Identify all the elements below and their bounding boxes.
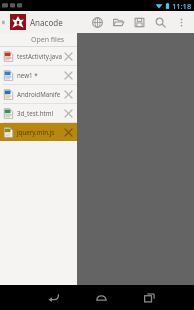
button[interactable]: new1 * <box>0 66 77 84</box>
button[interactable]: Navigate up <box>0 11 9 33</box>
staticText: jquery.min.js <box>17 128 63 136</box>
button[interactable]: Close 3d_test.html <box>63 108 74 119</box>
button[interactable]: Search <box>150 11 171 33</box>
staticText: (1)[f"").toLowerCase(),b[X]=b[X]&&new Re… <box>1 47 154 54</box>
staticText: b(a,this.toArray()),return this.pushStac… <box>1 54 163 61</box>
staticText: numf.isWindow(a)?!a:a.nodeType===9?!a.de… <box>1 40 151 47</box>
staticText: 11:18 <box>172 1 192 11</box>
button[interactable]: More options <box>171 11 192 33</box>
button[interactable]: Back <box>40 285 66 310</box>
staticText: Anacode <box>30 17 63 28</box>
button[interactable]: Open folder <box>108 11 129 33</box>
staticText: Open files <box>31 35 65 45</box>
button[interactable]: Save <box>129 11 150 33</box>
staticText: new1 * <box>17 71 63 79</box>
button[interactable]: Close jquery.min.js <box>63 127 74 138</box>
staticText: jquery.org/license */ <box>1 33 67 40</box>
staticText: AndroidManifest.xml <box>17 90 63 98</box>
button[interactable]: jquery.min.js <box>0 123 77 141</box>
button[interactable]: AndroidManifest.xml <box>0 85 77 103</box>
button[interactable]: Close new1 * <box>63 70 74 81</box>
button[interactable]: 3d_test.html <box>0 104 77 122</box>
staticText: 3d_test.html <box>17 109 63 117</box>
button[interactable]: Close AndroidManifest.xml <box>63 89 74 100</box>
button[interactable]: Anacode logo <box>10 14 26 30</box>
button[interactable]: Close testActivity.java <box>63 51 74 62</box>
button[interactable]: Home <box>88 285 114 310</box>
button[interactable]: Settings <box>87 11 108 33</box>
staticText: testActivity.java <box>17 52 63 60</box>
button[interactable]: Recent apps <box>136 285 162 310</box>
button[interactable]: testActivity.java <box>0 47 77 65</box>
